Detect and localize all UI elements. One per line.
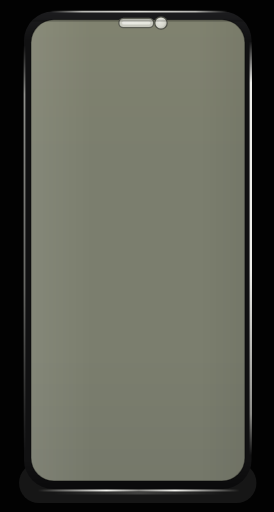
button[interactable]: Phone screen protector product photo: [0, 0, 274, 512]
